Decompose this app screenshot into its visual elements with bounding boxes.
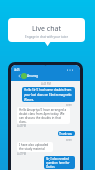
button[interactable]: Live chat xyxy=(8,18,85,42)
staticText: 4:45PM xyxy=(17,124,27,128)
staticText: 4:45 PM xyxy=(41,82,51,86)
staticText: Anurag xyxy=(27,74,38,78)
staticText: Live chat xyxy=(32,24,61,34)
staticText: 4:47PM xyxy=(17,152,27,156)
staticText: I have also uploaded the study material … xyxy=(19,143,51,151)
button[interactable]: Thank you Sir! xyxy=(58,131,75,136)
button[interactable]: Hello Anupriya! I have arranged a doubt … xyxy=(17,107,70,124)
staticText: Hello Anupriya! I have arranged a doubt … xyxy=(19,108,68,123)
button[interactable]: Hello Sir! I had some doubts from your l… xyxy=(22,87,75,102)
staticText: 4:45 xyxy=(14,68,20,72)
staticText: seen xyxy=(66,103,72,107)
staticText: Hello Sir! I had some doubts from your l… xyxy=(24,88,73,101)
staticText: Engage in chat with your tutor xyxy=(25,35,68,39)
button[interactable]: Back xyxy=(16,73,22,79)
staticText: seen xyxy=(66,138,72,142)
button[interactable]: Sir, I also needed question here for Opt… xyxy=(44,156,75,169)
staticText: Thank you Sir! xyxy=(59,132,74,135)
button[interactable]: I have also uploaded the study material … xyxy=(17,142,53,152)
staticText: Sir, I also needed question here for Opt… xyxy=(46,157,73,168)
button[interactable] xyxy=(21,73,27,79)
